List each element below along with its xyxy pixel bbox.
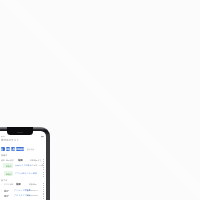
staticText: 実施期間 bbox=[29, 183, 37, 185]
staticText: ・ bbox=[1, 183, 3, 185]
staticText: ・ bbox=[1, 189, 3, 191]
staticText: 募集中 bbox=[6, 165, 12, 167]
staticText: 人気 bbox=[11, 148, 15, 151]
staticText: 絞り込み bbox=[27, 148, 35, 150]
staticText: 受付中のテスト bbox=[1, 139, 20, 142]
staticText: 2024/02/28 bbox=[27, 194, 38, 197]
button[interactable]: 応募締切順 bbox=[16, 147, 24, 151]
button[interactable] bbox=[0, 188, 45, 193]
staticText: 実施中 bbox=[1, 154, 8, 157]
button[interactable]: More options bbox=[42, 189, 44, 194]
staticText: 全て bbox=[1, 148, 5, 151]
staticText: ・ bbox=[1, 165, 3, 167]
staticText: 募集中 bbox=[6, 173, 12, 175]
staticText: 2024/03/12 bbox=[27, 189, 38, 192]
button[interactable]: 募集中 bbox=[4, 171, 13, 176]
staticText: テスト名称 bbox=[4, 183, 14, 185]
staticText: 終了分 bbox=[1, 179, 8, 182]
button[interactable]: More options bbox=[42, 183, 44, 188]
button[interactable]: More options bbox=[42, 165, 44, 170]
staticText: 応募締切順 bbox=[16, 148, 24, 151]
staticText: 種別 bbox=[6, 159, 10, 161]
button[interactable] bbox=[0, 170, 45, 177]
staticText: ・ bbox=[1, 172, 3, 174]
button[interactable]: More options bbox=[42, 159, 44, 164]
staticText: 完了 bbox=[4, 189, 10, 192]
button[interactable]: More options bbox=[42, 194, 44, 199]
staticText: 完了 bbox=[4, 194, 10, 197]
button[interactable] bbox=[0, 193, 45, 198]
button[interactable]: 募集中 bbox=[3, 163, 13, 168]
staticText: ・ bbox=[1, 194, 3, 196]
staticText: 9:41 bbox=[1, 135, 5, 138]
button[interactable]: 人気 bbox=[11, 147, 15, 151]
staticText: プロトタイプ検証 bbox=[14, 194, 31, 197]
staticText: 報酬 bbox=[16, 183, 21, 186]
staticText: 形式 bbox=[10, 159, 14, 161]
staticText: アンケート調査票 bbox=[14, 189, 31, 192]
staticText: 状態 bbox=[1, 159, 5, 161]
staticText: Webサイト評価 bbox=[15, 164, 30, 167]
button[interactable] bbox=[0, 163, 45, 171]
button[interactable]: 新着 bbox=[6, 147, 10, 151]
staticText: 報酬 bbox=[18, 159, 23, 162]
staticText: あと3日・12名 bbox=[30, 164, 44, 167]
staticText: 新着 bbox=[6, 148, 10, 151]
staticText: ▮▮▰ bbox=[41, 135, 45, 137]
staticText: アプリβ版モニター募集 bbox=[15, 172, 38, 175]
staticText: 応募期限まで bbox=[30, 159, 42, 161]
button[interactable]: 全て bbox=[1, 147, 5, 151]
button[interactable]: More options bbox=[42, 172, 44, 177]
